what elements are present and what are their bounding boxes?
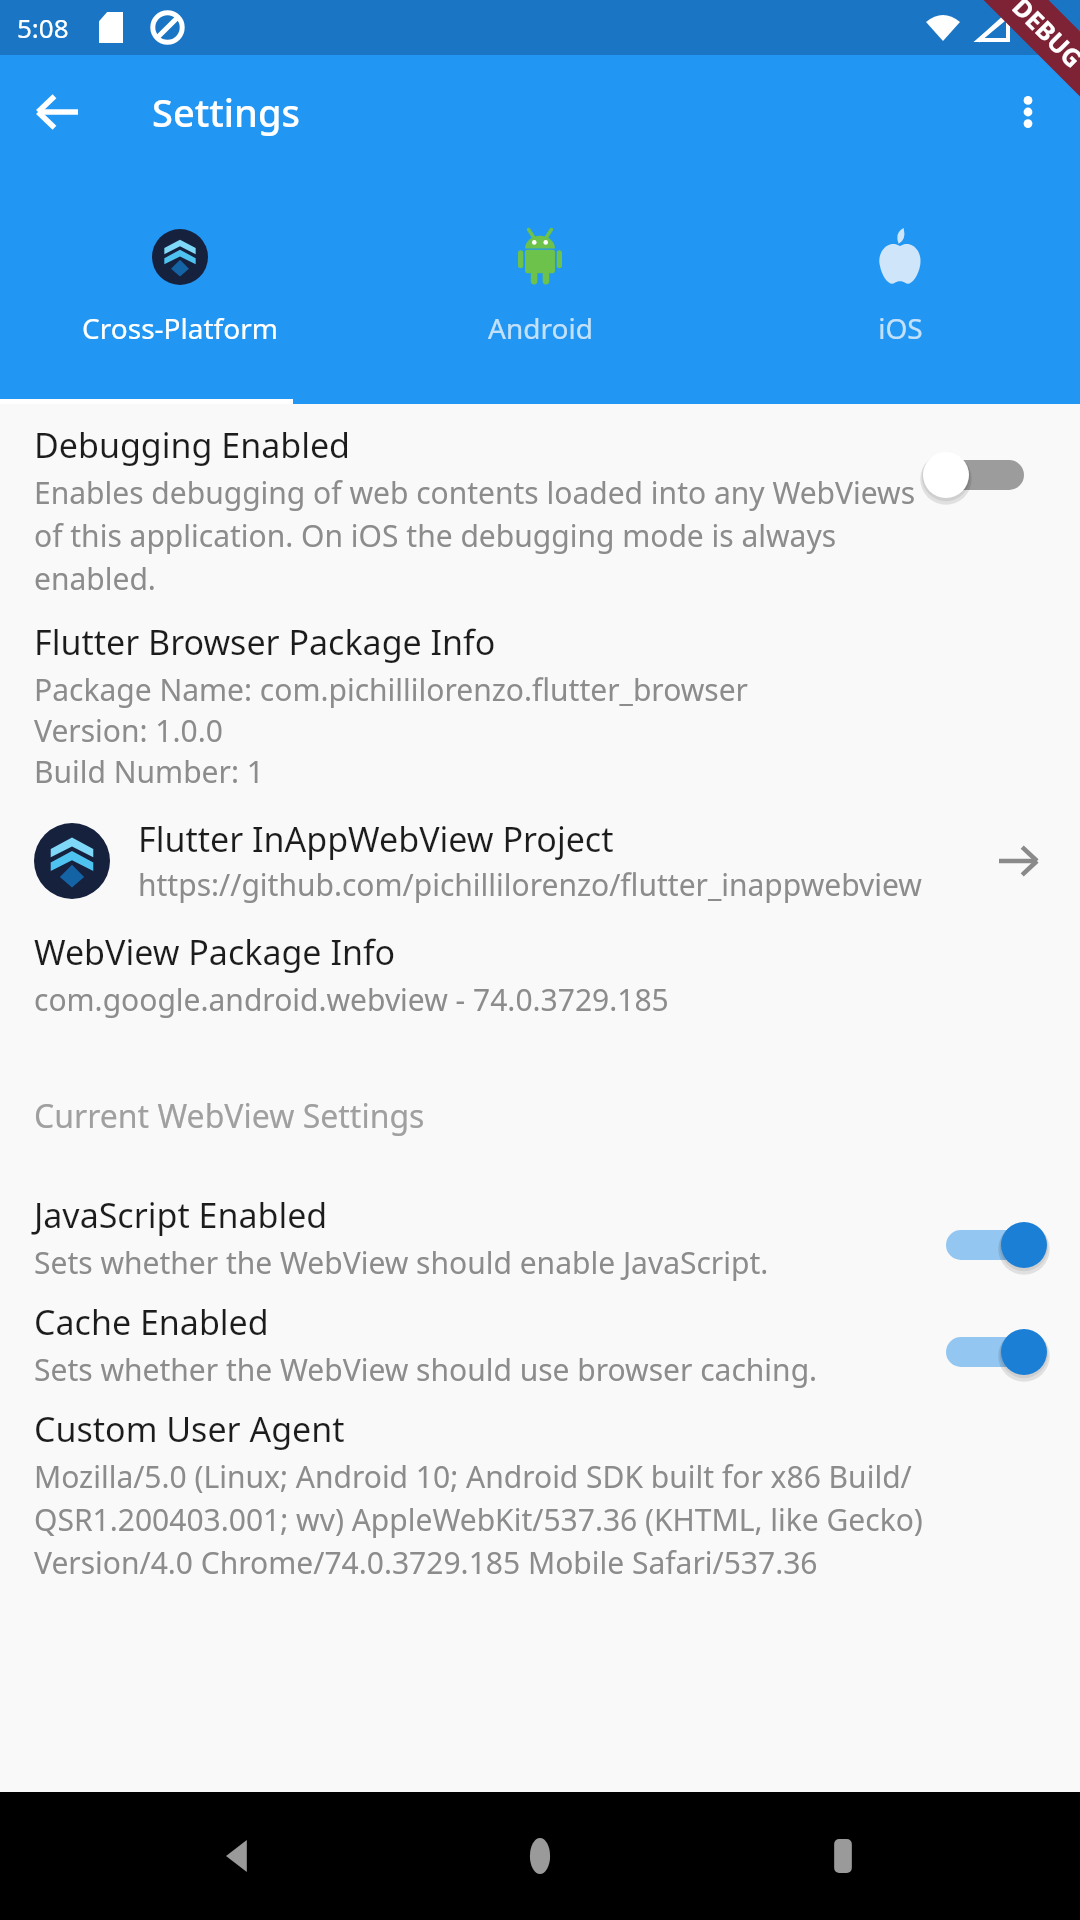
button[interactable]: Flutter Browser Package Info [0, 619, 1080, 792]
staticText: Cross-Platform [82, 309, 278, 347]
staticText: Current WebView Settings [34, 1094, 425, 1138]
button[interactable]: Back [20, 74, 96, 150]
staticText: Mozilla/5.0 (Linux; Android 10; Android … [34, 1456, 1046, 1583]
staticText: Sets whether the WebView should enable J… [34, 1242, 769, 1283]
button[interactable]: Debugging Enabled [938, 446, 1046, 504]
staticText: Settings [152, 86, 300, 138]
button[interactable]: Cache Enabled [938, 1323, 1046, 1381]
button[interactable]: WebView Package Info [0, 929, 1080, 1020]
staticText: WebView Package Info [34, 929, 396, 975]
staticText: Flutter InAppWebView Project [138, 816, 614, 862]
staticText: Enables debugging of web contents loaded… [34, 472, 920, 599]
staticText: 5:08 [17, 10, 69, 45]
staticText: Flutter Browser Package Info [34, 619, 496, 665]
button[interactable]: Flutter InAppWebView Project [0, 816, 1080, 905]
staticText: com.google.android.webview - 74.0.3729.1… [34, 979, 669, 1020]
button[interactable]: Open project page [990, 833, 1046, 889]
staticText: Cache Enabled [34, 1299, 269, 1345]
staticText: Android [488, 309, 593, 347]
button[interactable]: JavaScript Enabled [0, 1192, 1080, 1283]
staticText: https://github.com/pichillilorenzo/flutt… [138, 864, 922, 905]
staticText: Package Name: com.pichillilorenzo.flutte… [34, 669, 748, 710]
staticText: JavaScript Enabled [34, 1192, 328, 1238]
button[interactable]: JavaScript Enabled [938, 1216, 1046, 1274]
staticText: Build Number: 1 [34, 751, 264, 792]
button[interactable]: iOS [720, 168, 1080, 404]
button[interactable]: Recent apps [778, 1792, 908, 1920]
button[interactable]: More options [990, 74, 1066, 150]
staticText: Version: 1.0.0 [34, 710, 223, 751]
button[interactable]: Debugging Enabled [0, 422, 1080, 599]
button[interactable]: Back [173, 1792, 303, 1920]
button[interactable]: Custom User Agent [0, 1406, 1080, 1583]
staticText: DEBUG [1006, 0, 1080, 74]
button[interactable]: Android [360, 168, 720, 404]
staticText: Custom User Agent [34, 1406, 345, 1452]
staticText: Debugging Enabled [34, 422, 351, 468]
button[interactable]: Cross-Platform [0, 168, 360, 404]
staticText: iOS [878, 309, 923, 347]
button[interactable]: Home [475, 1792, 605, 1920]
button[interactable]: Cache Enabled [0, 1299, 1080, 1390]
staticText: Sets whether the WebView should use brow… [34, 1349, 818, 1390]
